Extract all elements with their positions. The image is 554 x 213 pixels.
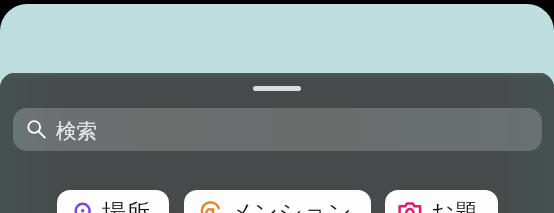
button[interactable]: Search bbox=[13, 108, 542, 151]
staticText: 場所 bbox=[102, 198, 150, 213]
other: Search bbox=[27, 120, 47, 140]
staticText: 検索 bbox=[56, 118, 97, 144]
staticText: メンション bbox=[229, 198, 352, 213]
button[interactable]: 場所 bbox=[57, 190, 169, 213]
staticText: お題 bbox=[430, 198, 479, 213]
button[interactable]: メンション bbox=[184, 190, 371, 213]
button[interactable]: お題 bbox=[385, 190, 498, 213]
